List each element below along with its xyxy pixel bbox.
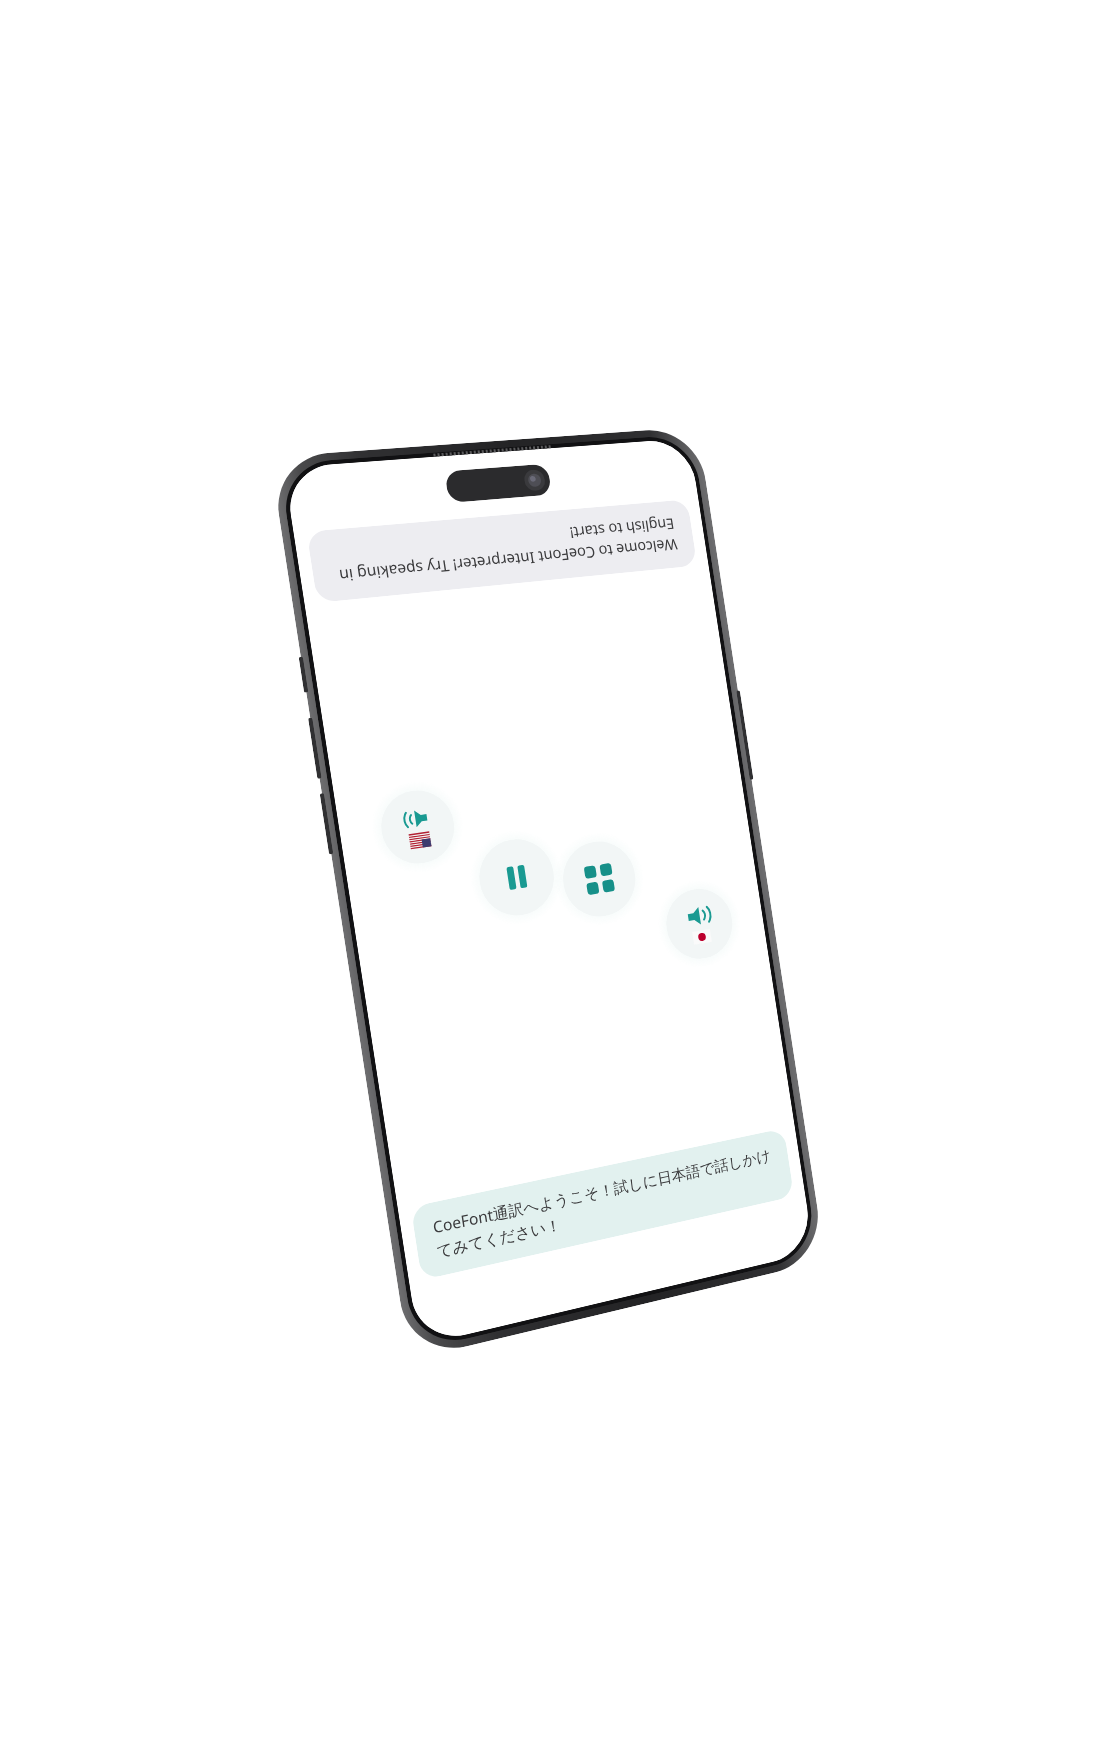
button[interactable]: Pause [463, 824, 569, 932]
button[interactable]: More options [547, 826, 650, 932]
button[interactable]: Play Japanese audio [652, 874, 747, 974]
staticText: CoeFont通訳へようこそ！試しに日本語で話しかけてみてください！ [431, 1144, 776, 1262]
button[interactable]: Play English audio [365, 775, 470, 879]
staticText: Welcome to CoeFont Interpreter! Try spea… [328, 513, 679, 587]
button[interactable]: CoeFont通訳へようこそ！試しに日本語で話しかけてみてください！ [410, 1128, 794, 1280]
button[interactable]: Welcome to CoeFont Interpreter! Try spea… [306, 499, 697, 603]
